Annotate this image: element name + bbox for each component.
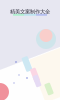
staticText: 精美文案制作大全 bbox=[10, 8, 50, 15]
